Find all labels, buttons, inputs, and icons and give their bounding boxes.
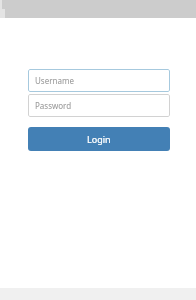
- button[interactable]: Password: [28, 94, 170, 117]
- button[interactable]: Login: [28, 127, 170, 151]
- staticText: Username: [35, 75, 74, 86]
- staticText: Password: [35, 100, 72, 111]
- staticText: Login: [87, 133, 111, 145]
- button[interactable]: Username: [28, 69, 170, 92]
